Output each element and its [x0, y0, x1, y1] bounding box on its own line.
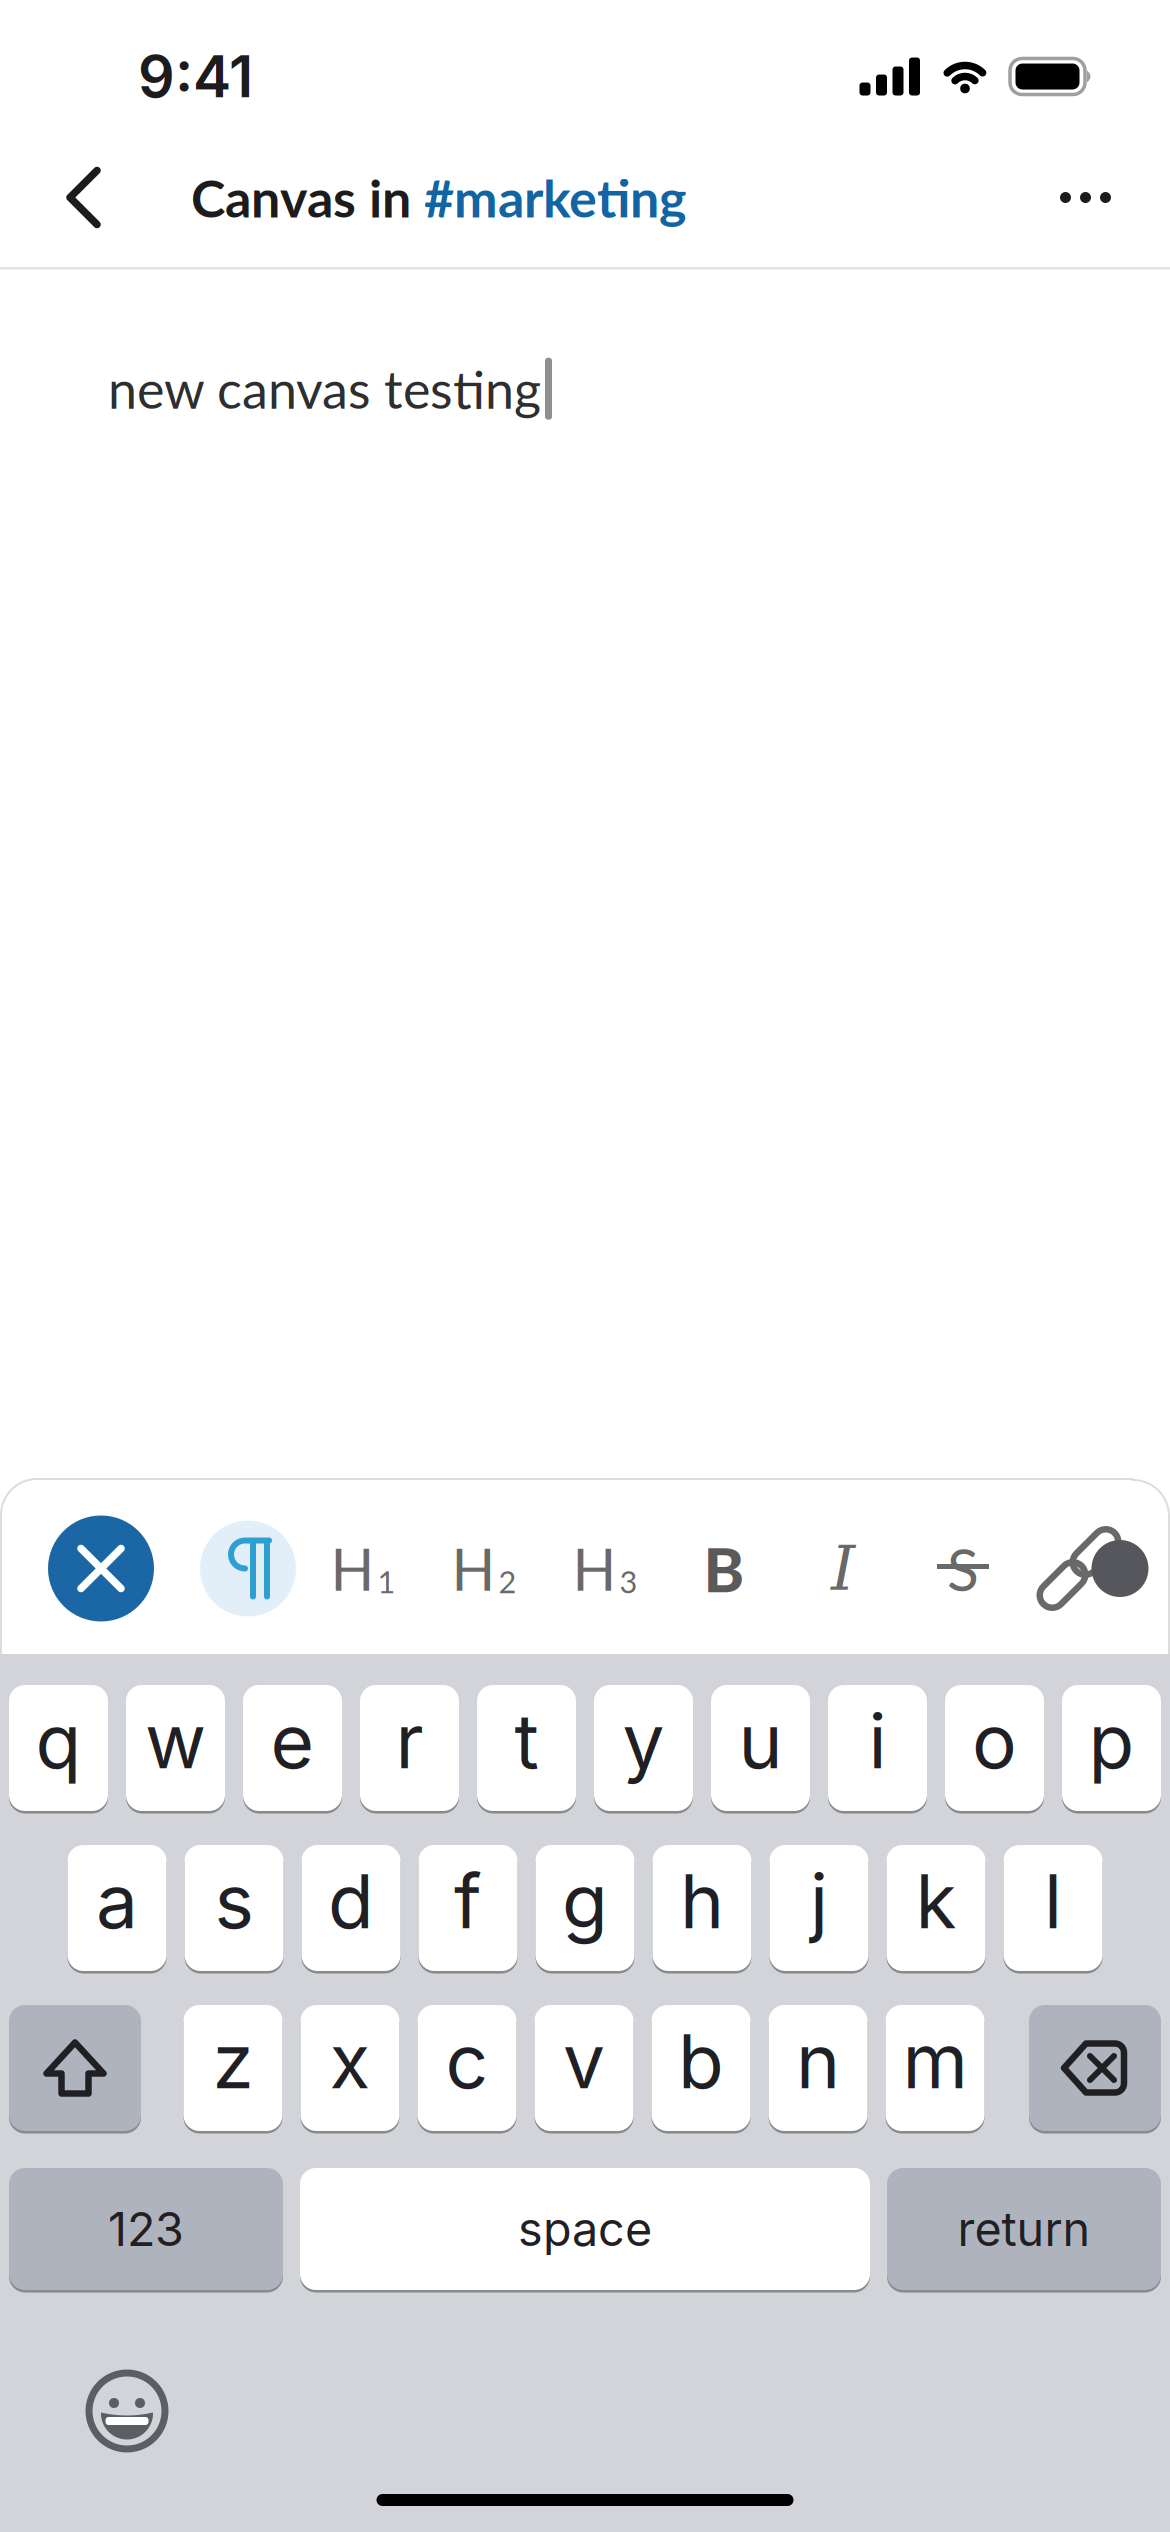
staticText: h [680, 1856, 724, 1946]
staticText: s [214, 1856, 253, 1946]
button[interactable]: Heading 2 [439, 1522, 528, 1615]
button[interactable]: return [887, 2166, 1161, 2291]
staticText: 2 [498, 1563, 516, 1600]
staticText: H [572, 1534, 616, 1603]
button[interactable]: Heading 3 [560, 1522, 649, 1615]
button[interactable]: Strikethrough [925, 1521, 1001, 1616]
staticText: H [451, 1534, 495, 1603]
staticText: Canvas in [191, 166, 424, 229]
staticText: 1 [377, 1563, 395, 1600]
button[interactable]: a [67, 1843, 166, 1972]
button[interactable]: 123 [9, 2166, 283, 2291]
staticText: x [329, 2016, 370, 2106]
staticText: a [96, 1856, 138, 1946]
staticText: H [330, 1534, 374, 1603]
button[interactable]: c [417, 2003, 516, 2132]
button[interactable]: o [945, 1683, 1044, 1812]
staticText: g [562, 1856, 608, 1946]
staticText: S [947, 1533, 979, 1604]
staticText: c [445, 2016, 488, 2106]
button[interactable]: z [183, 2003, 282, 2132]
button[interactable]: w [126, 1683, 225, 1812]
button[interactable]: Heading 1 [318, 1522, 407, 1615]
button[interactable]: j [769, 1843, 868, 1972]
staticText: q [35, 1696, 81, 1786]
staticText: z [212, 2016, 253, 2106]
button[interactable]: u [711, 1683, 810, 1812]
staticText: f [454, 1856, 482, 1946]
button[interactable]: e [243, 1683, 342, 1812]
staticText: B [703, 1532, 744, 1605]
staticText: d [328, 1856, 374, 1946]
button[interactable]: Paragraph style [200, 1520, 296, 1616]
button[interactable]: k [886, 1843, 985, 1972]
staticText: w [145, 1696, 206, 1786]
staticText: v [563, 2016, 605, 2106]
staticText: j [810, 1856, 828, 1946]
button[interactable]: Link [1034, 1523, 1124, 1613]
staticText: t [514, 1696, 538, 1786]
staticText: space [518, 2201, 652, 2257]
button[interactable]: q [9, 1683, 108, 1812]
button[interactable]: Back [0, 166, 122, 228]
button[interactable]: m [885, 2003, 984, 2132]
staticText: m [902, 2016, 967, 2106]
button[interactable]: g [535, 1843, 634, 1972]
staticText: r [395, 1696, 423, 1786]
staticText: i [868, 1696, 886, 1786]
button[interactable]: b [651, 2003, 750, 2132]
button[interactable]: Bold [691, 1520, 756, 1617]
button[interactable]: p [1062, 1683, 1161, 1812]
staticText: #marketing [424, 166, 686, 229]
button[interactable]: Shift [9, 2003, 141, 2132]
button[interactable]: x [300, 2003, 399, 2132]
staticText: return [957, 2201, 1090, 2257]
button[interactable]: d [301, 1843, 400, 1972]
button[interactable]: r [360, 1683, 459, 1812]
button[interactable]: s [184, 1843, 283, 1972]
staticText: 9:41 [138, 42, 253, 111]
button[interactable]: Italic [819, 1521, 867, 1616]
button[interactable]: f [418, 1843, 517, 1972]
staticText: o [972, 1696, 1017, 1786]
button[interactable]: Emoji [82, 2366, 172, 2456]
staticText: n [796, 2016, 840, 2106]
staticText: y [622, 1696, 664, 1786]
button[interactable]: space [300, 2166, 870, 2291]
staticText: b [678, 2016, 724, 2106]
button[interactable]: i [828, 1683, 927, 1812]
staticText: l [1044, 1856, 1062, 1946]
button[interactable]: More options [1060, 162, 1170, 233]
staticText: p [1088, 1696, 1134, 1786]
button[interactable]: y [594, 1683, 693, 1812]
staticText: k [915, 1856, 956, 1946]
staticText: 123 [108, 2201, 184, 2257]
button[interactable]: l [1003, 1843, 1102, 1972]
button[interactable]: n [768, 2003, 867, 2132]
button[interactable]: t [477, 1683, 576, 1812]
staticText: e [270, 1696, 314, 1786]
staticText: 3 [619, 1563, 637, 1600]
staticText: u [738, 1696, 782, 1786]
staticText: new canvas testing [108, 357, 541, 420]
button[interactable]: v [534, 2003, 633, 2132]
button[interactable]: Delete [1029, 2003, 1161, 2132]
button[interactable]: Close formatting [48, 1515, 154, 1621]
button[interactable]: h [652, 1843, 751, 1972]
staticText: I [831, 1533, 855, 1604]
